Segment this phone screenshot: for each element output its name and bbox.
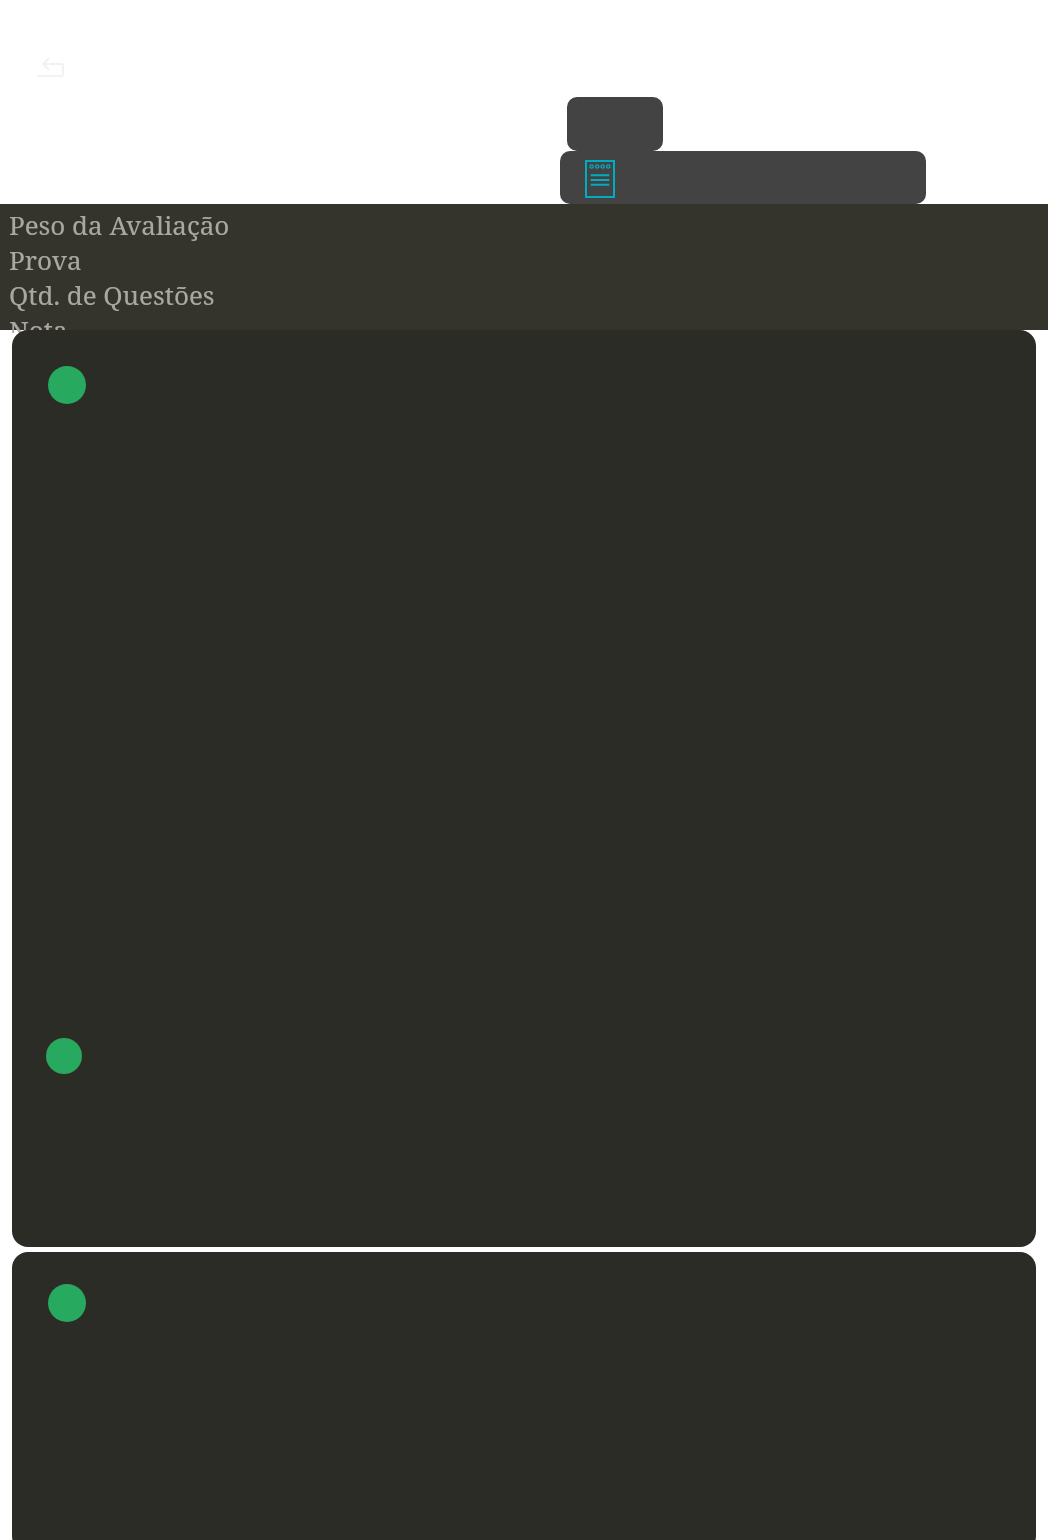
- staticText: Qtd. de Questões: [9, 277, 215, 312]
- button[interactable]: Rótulo: [567, 97, 663, 151]
- staticText: Prova: [9, 242, 82, 277]
- staticText: Peso da Avaliação: [9, 207, 230, 242]
- button[interactable]: Avaliação: [560, 151, 926, 204]
- button[interactable]: [12, 330, 1036, 1247]
- staticText: Nota: [9, 312, 68, 333]
- button[interactable]: [12, 1252, 1036, 1540]
